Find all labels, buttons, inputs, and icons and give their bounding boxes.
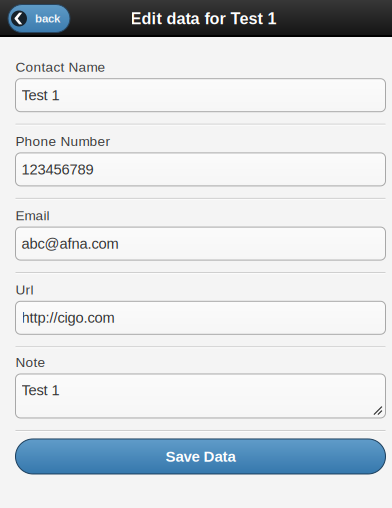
staticText: back bbox=[35, 12, 60, 25]
staticText: Note bbox=[15, 355, 45, 370]
staticText: abc@afna.com bbox=[21, 235, 118, 252]
button[interactable]: back bbox=[8, 4, 70, 32]
staticText: Edit data for Test 1 bbox=[130, 9, 276, 28]
staticText: Test 1 bbox=[21, 87, 59, 103]
button[interactable]: Save Data bbox=[15, 439, 385, 474]
staticText: Save Data bbox=[165, 448, 235, 465]
staticText: Url bbox=[15, 282, 33, 297]
staticText: 123456789 bbox=[21, 161, 93, 178]
staticText: Contact Name bbox=[15, 59, 105, 75]
staticText: Test 1 bbox=[21, 382, 59, 398]
staticText: Phone Number bbox=[15, 134, 110, 149]
staticText: http://cigo.com bbox=[21, 310, 114, 326]
staticText: Email bbox=[15, 208, 49, 223]
